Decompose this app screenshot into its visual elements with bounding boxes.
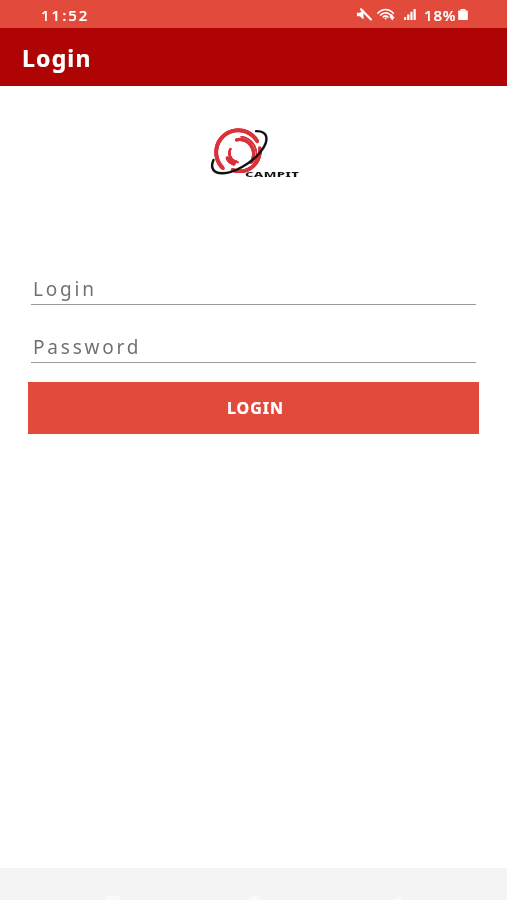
staticText: 18% [424,5,457,25]
button[interactable]: Password [31,334,476,363]
staticText: CAMPIT [245,169,300,179]
staticText: 11:52 [41,5,90,25]
button[interactable]: LOGIN [28,382,479,434]
button[interactable]: Login [31,276,476,305]
staticText: LOGIN [227,397,285,419]
staticText: Password [33,334,142,360]
staticText: Login [33,276,97,302]
staticText: Login [22,42,92,73]
